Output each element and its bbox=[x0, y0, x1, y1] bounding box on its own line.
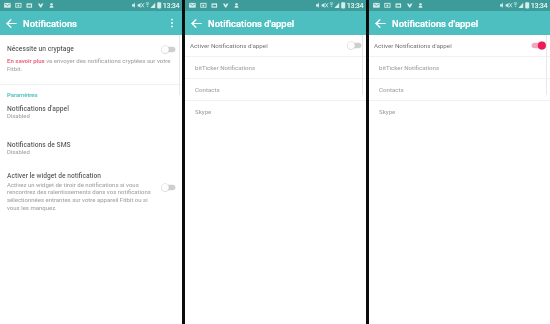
button[interactable]: Skype bbox=[185, 101, 366, 122]
staticText: Notifications de SMS bbox=[7, 141, 71, 149]
button[interactable]: Back bbox=[4, 16, 19, 31]
button[interactable]: Activer le widget de notification bbox=[0, 172, 182, 211]
staticText: bitTicker Notifications bbox=[195, 64, 256, 71]
staticText: Activer le widget de notification bbox=[7, 172, 101, 180]
button[interactable]: Skype bbox=[369, 101, 550, 122]
staticText: Notifications d'appel bbox=[7, 105, 69, 113]
staticText: Disabled bbox=[7, 149, 30, 156]
staticText: Nécessite un cryptage bbox=[7, 45, 74, 53]
staticText: Notifications bbox=[23, 18, 77, 29]
button[interactable]: bitTicker Notifications bbox=[369, 57, 550, 78]
button[interactable]: Activer Notifications d'appel bbox=[369, 35, 550, 56]
staticText: Contacts bbox=[379, 86, 404, 93]
button[interactable]: Contacts bbox=[369, 79, 550, 100]
staticText: Skype bbox=[195, 108, 212, 115]
staticText: Notifications d'appel bbox=[208, 18, 295, 29]
button[interactable]: Activer Notifications d'appel bbox=[185, 35, 366, 56]
staticText: Contacts bbox=[195, 86, 220, 93]
staticText: 13:34 bbox=[531, 2, 548, 10]
button[interactable]: Notifications de SMS bbox=[0, 141, 182, 156]
button[interactable]: Contacts bbox=[185, 79, 366, 100]
button[interactable]: bitTicker Notifications bbox=[185, 57, 366, 78]
staticText: Skype bbox=[379, 108, 396, 115]
staticText: En savoir plus va envoyer des notificati… bbox=[7, 57, 175, 72]
staticText: Activez un widget de tiroir de notificat… bbox=[7, 181, 155, 211]
staticText: Paramètres bbox=[7, 92, 38, 99]
staticText: 13:34 bbox=[347, 2, 364, 10]
button[interactable]: Back bbox=[189, 16, 204, 31]
staticText: 13:34 bbox=[163, 2, 180, 10]
button[interactable]: Notifications d'appel bbox=[0, 105, 182, 120]
staticText: Activer Notifications d'appel bbox=[190, 42, 268, 49]
staticText: Disabled bbox=[7, 113, 30, 120]
button[interactable]: Nécessite un cryptage bbox=[0, 37, 182, 61]
staticText: Notifications d'appel bbox=[392, 18, 479, 29]
button[interactable]: Back bbox=[373, 16, 388, 31]
button[interactable]: More options bbox=[166, 17, 178, 29]
staticText: Activer Notifications d'appel bbox=[374, 42, 452, 49]
staticText: bitTicker Notifications bbox=[379, 64, 440, 71]
